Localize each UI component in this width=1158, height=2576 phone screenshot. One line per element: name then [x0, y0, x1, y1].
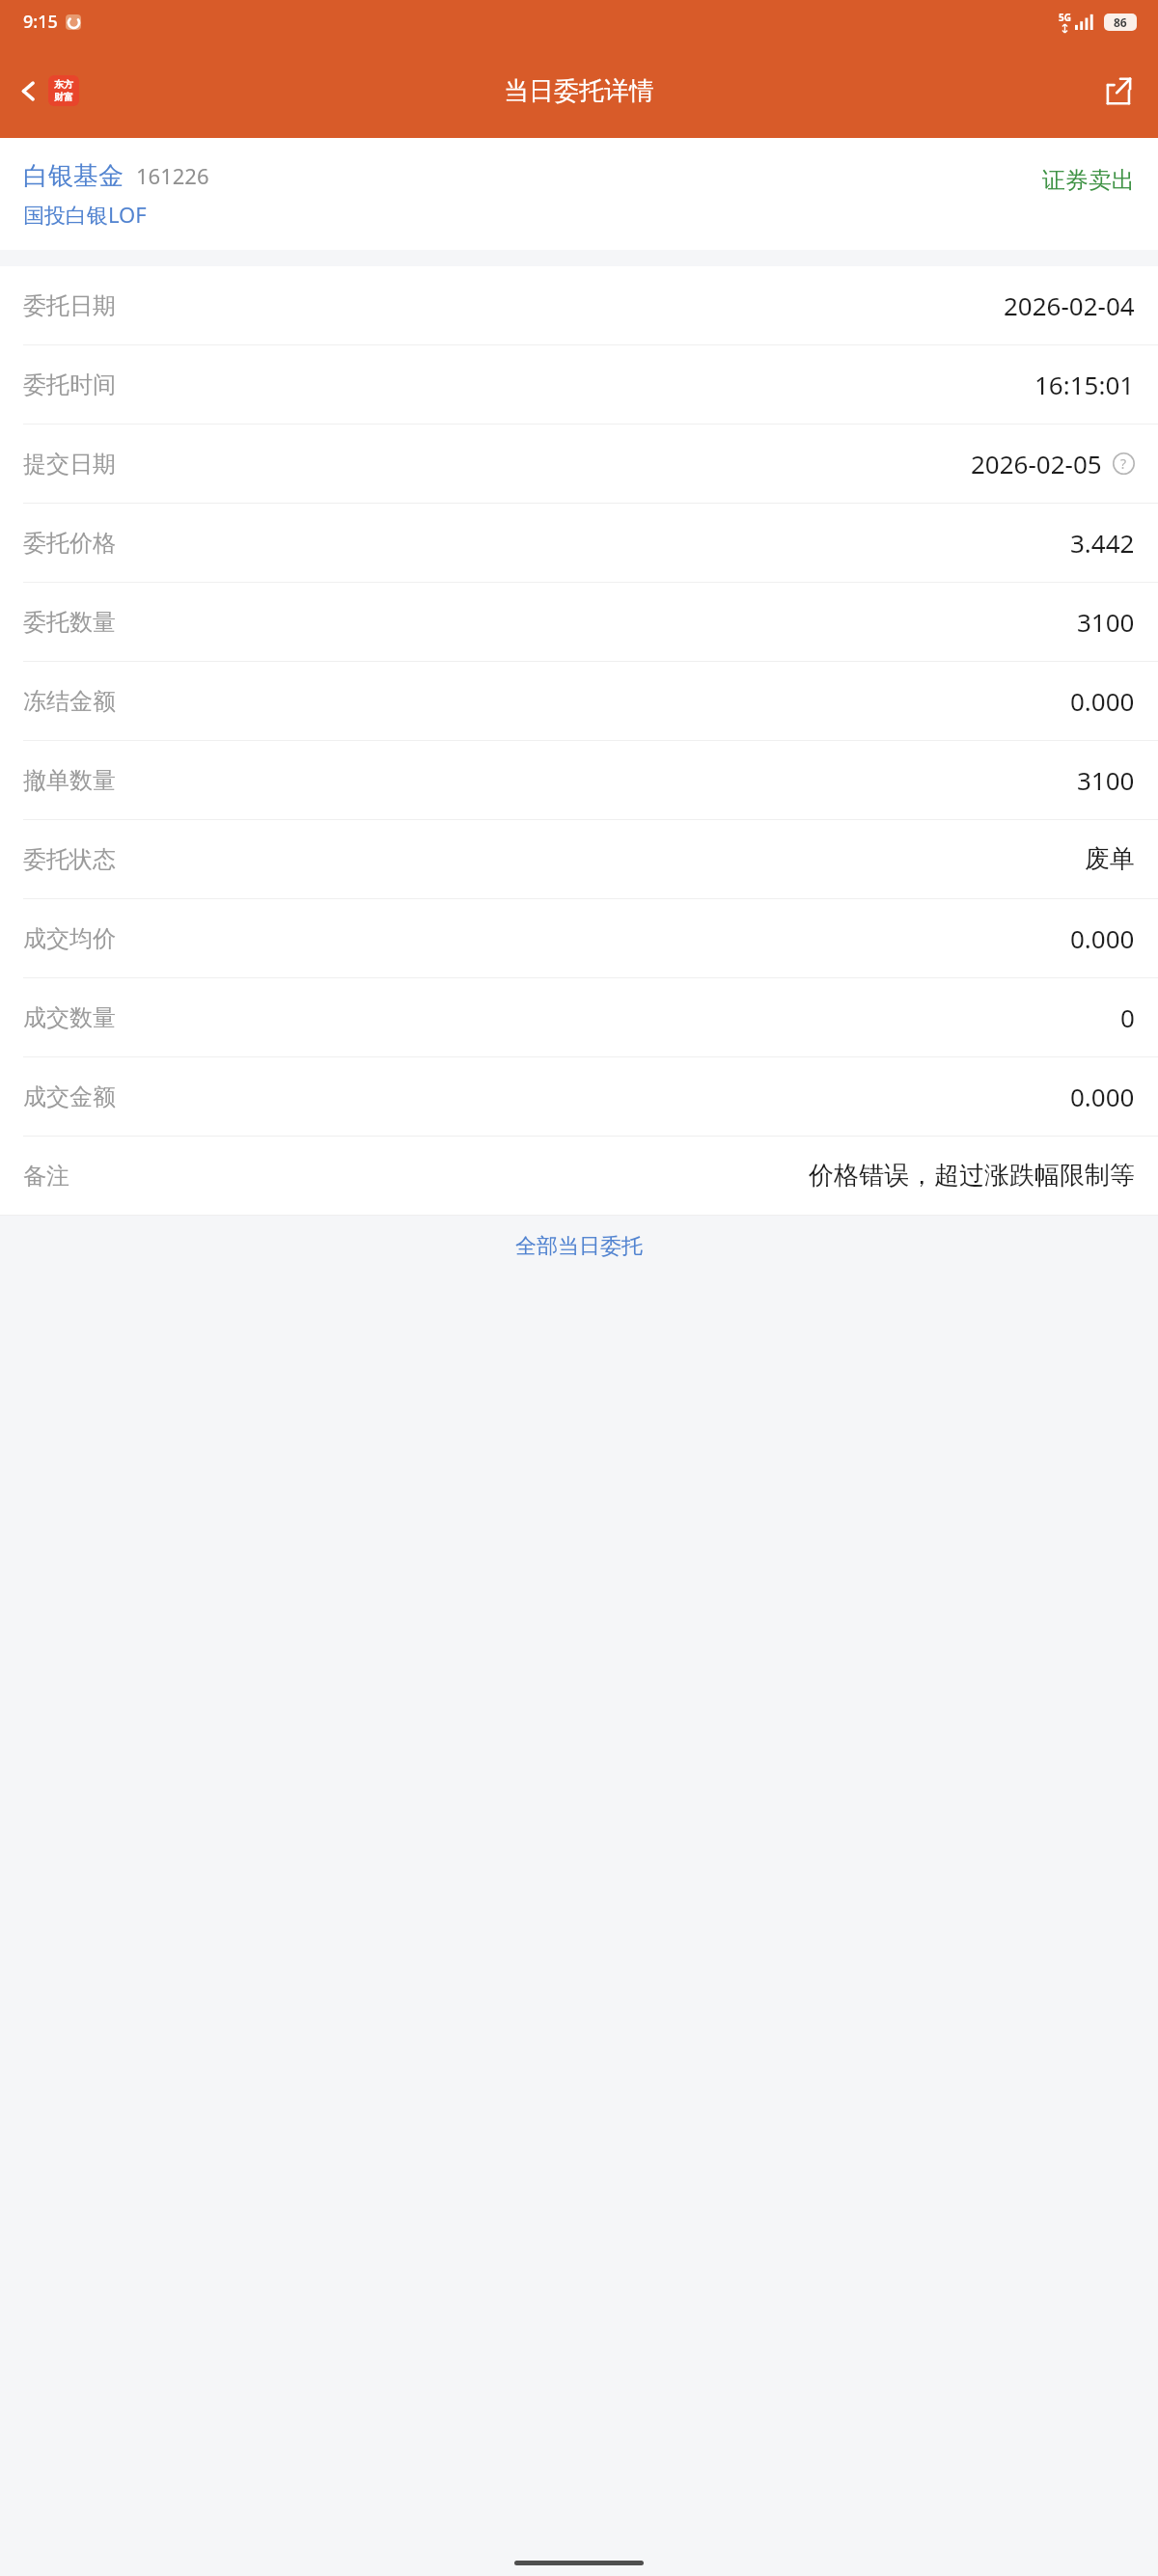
staticText: 86 [1114, 14, 1127, 30]
staticText: 0.000 [1070, 684, 1135, 718]
staticText: 证券卖出 [1042, 166, 1135, 195]
button[interactable]: Back [8, 66, 89, 116]
staticText: 全部当日委托 [515, 1233, 643, 1260]
button[interactable]: 白银基金 [0, 138, 1158, 250]
button[interactable]: 委托状态 [0, 820, 1158, 898]
staticText: 东方 [54, 78, 73, 91]
staticText: ? [1120, 454, 1127, 473]
staticText: 161226 [136, 161, 209, 190]
staticText: 0.000 [1070, 921, 1135, 955]
staticText: 委托价格 [23, 529, 116, 558]
staticText: 0 [1120, 1000, 1135, 1034]
staticText: 废单 [1085, 843, 1135, 875]
button[interactable]: 成交均价 [0, 899, 1158, 977]
button[interactable]: 委托数量 [0, 583, 1158, 661]
button[interactable]: Share [1093, 66, 1144, 117]
button[interactable]: 委托日期 [0, 266, 1158, 344]
staticText: 撤单数量 [23, 766, 116, 795]
staticText: 2026-02-05 [971, 447, 1102, 480]
staticText: 成交金额 [23, 1082, 116, 1111]
staticText: 委托时间 [23, 370, 116, 399]
staticText: 3100 [1077, 605, 1135, 639]
button[interactable]: 提交日期 [0, 425, 1158, 503]
staticText: 0.000 [1070, 1080, 1135, 1113]
staticText: 冻结金额 [23, 687, 116, 716]
staticText: 价格错误，超过涨跌幅限制等 [809, 1160, 1135, 1192]
staticText: 5G [1059, 11, 1071, 24]
staticText: 国投白银LOF [23, 200, 147, 229]
button[interactable]: 成交金额 [0, 1057, 1158, 1136]
button[interactable]: 冻结金额 [0, 662, 1158, 740]
staticText: 备注 [23, 1162, 69, 1191]
button[interactable]: 备注 [0, 1137, 1158, 1215]
button[interactable]: 撤单数量 [0, 741, 1158, 819]
staticText: 3.442 [1070, 526, 1135, 560]
staticText: 成交均价 [23, 924, 116, 953]
staticText: 委托状态 [23, 845, 116, 874]
button[interactable]: 委托时间 [0, 345, 1158, 424]
staticText: 成交数量 [23, 1003, 116, 1032]
staticText: 当日委托详情 [504, 75, 654, 107]
staticText: 委托数量 [23, 608, 116, 637]
staticText: 2026-02-04 [1004, 288, 1135, 322]
staticText: 白银基金 [23, 160, 124, 192]
staticText: 9:15 [23, 10, 58, 34]
staticText: 提交日期 [23, 450, 116, 479]
button[interactable]: 委托价格 [0, 504, 1158, 582]
staticText: 财富 [54, 91, 73, 103]
staticText: 3100 [1077, 763, 1135, 797]
button[interactable]: 成交数量 [0, 978, 1158, 1056]
button[interactable]: 全部当日委托 [0, 1216, 1158, 1277]
staticText: 16:15:01 [1034, 368, 1135, 401]
staticText: 委托日期 [23, 291, 116, 320]
